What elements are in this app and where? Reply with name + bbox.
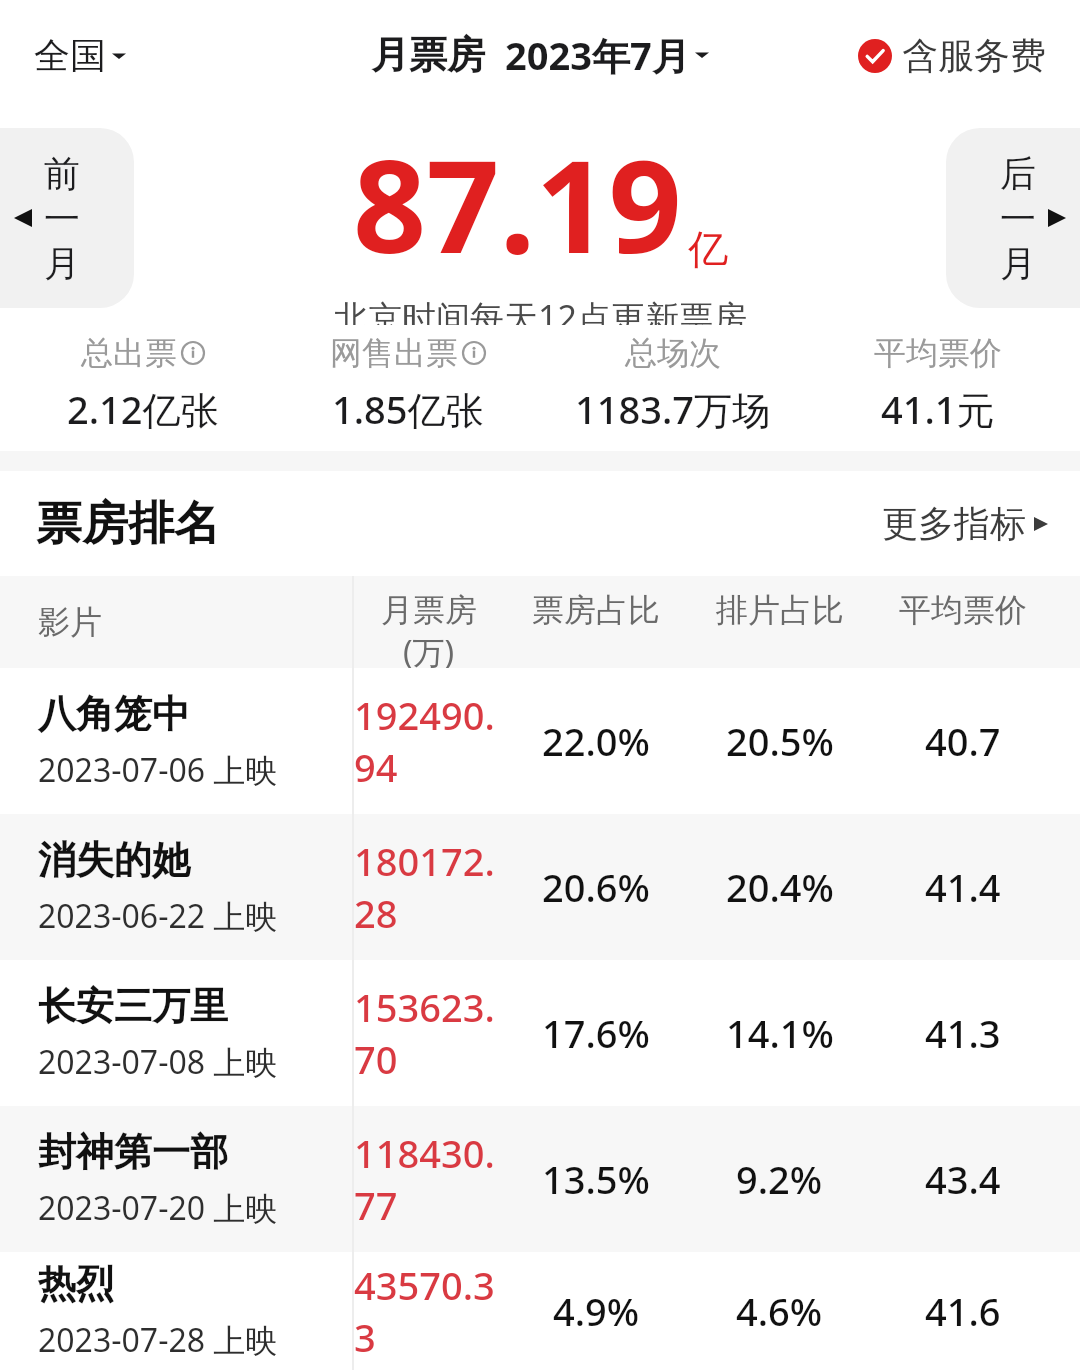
staticText: 一 <box>1000 196 1036 241</box>
button[interactable]: 更多指标 <box>878 497 1052 550</box>
staticText: 118430.77 <box>354 1127 504 1231</box>
staticText: 2023年7月 <box>505 29 690 81</box>
staticText: 票房占比 <box>532 590 660 630</box>
staticText: 4.6% <box>736 1285 823 1337</box>
staticText: 2023-07-06 上映 <box>38 748 278 792</box>
staticText: 9.2% <box>736 1153 823 1205</box>
staticText: 20.6% <box>542 861 650 913</box>
staticText: 票房排名 <box>36 495 220 553</box>
staticText: 影片 <box>38 602 102 642</box>
staticText: 4.9% <box>553 1285 640 1337</box>
staticText: 20.4% <box>726 861 834 913</box>
button[interactable]: 后 <box>946 128 1080 308</box>
staticText: 亿 <box>688 224 728 274</box>
staticText: 43570.33 <box>354 1259 504 1363</box>
staticText: 全国 <box>34 33 106 78</box>
staticText: 排片占比 <box>716 590 844 630</box>
staticText: 1183.7万场 <box>575 383 771 435</box>
button[interactable]: 前 <box>0 128 134 308</box>
staticText: (万) <box>403 630 455 668</box>
button[interactable]: 热烈 <box>0 1252 1080 1370</box>
staticText: 87.19 <box>353 116 682 290</box>
staticText: 180172.28 <box>354 835 504 939</box>
staticText: 41.3 <box>925 1007 1001 1059</box>
other: 后一月 <box>946 128 1080 308</box>
button[interactable]: 封神第一部 <box>0 1106 1080 1252</box>
staticText: 更多指标 <box>882 501 1026 546</box>
staticText: 17.6% <box>542 1007 650 1059</box>
staticText: 41.4 <box>925 861 1001 913</box>
staticText: 含服务费 <box>902 33 1046 78</box>
staticText: 一 <box>44 196 80 241</box>
staticText: 月票房 <box>371 31 485 79</box>
other: 含服务费 <box>858 39 892 73</box>
button[interactable]: 含服务费 <box>854 29 1050 82</box>
staticText: 43.4 <box>925 1153 1001 1205</box>
staticText: 总场次 <box>625 333 721 373</box>
staticText: 153623.70 <box>354 981 504 1085</box>
staticText: 2023-07-20 上映 <box>38 1186 278 1230</box>
staticText: 消失的她 <box>38 836 190 884</box>
staticText: 前 <box>44 151 80 196</box>
staticText: 月 <box>1000 241 1036 286</box>
other: 前一月 <box>0 128 134 308</box>
staticText: 2.12亿张 <box>67 383 219 435</box>
staticText: 2023-07-08 上映 <box>38 1040 278 1084</box>
staticText: 22.0% <box>542 715 650 767</box>
staticText: 192490.94 <box>354 689 504 793</box>
staticText: 封神第一部 <box>38 1128 228 1176</box>
staticText: 八角笼中 <box>38 690 190 738</box>
staticText: 长安三万里 <box>38 982 228 1030</box>
staticText: 41.1元 <box>881 383 995 435</box>
button[interactable]: 八角笼中 <box>0 668 1080 814</box>
staticText: 网售出票 <box>330 333 458 373</box>
staticText: 2023-07-28 上映 <box>38 1318 278 1362</box>
button[interactable]: 全国 <box>30 27 130 84</box>
staticText: 热烈 <box>38 1260 114 1308</box>
staticText: 北京时间每天12点更新票房 <box>334 294 747 325</box>
staticText: 总出票 <box>81 333 177 373</box>
staticText: 1.85亿张 <box>332 383 484 435</box>
staticText: 20.5% <box>726 715 834 767</box>
staticText: 平均票价 <box>899 590 1027 630</box>
staticText: 月 <box>44 241 80 286</box>
staticText: 14.1% <box>726 1007 834 1059</box>
staticText: 13.5% <box>542 1153 650 1205</box>
staticText: 月票房 <box>381 590 477 630</box>
staticText: 平均票价 <box>874 333 1002 373</box>
button[interactable]: 长安三万里 <box>0 960 1080 1106</box>
staticText: 2023-06-22 上映 <box>38 894 278 938</box>
button[interactable]: 月票房 <box>367 25 713 85</box>
staticText: 后 <box>1000 151 1036 196</box>
staticText: 40.7 <box>925 715 1001 767</box>
button[interactable]: 消失的她 <box>0 814 1080 960</box>
staticText: 41.6 <box>925 1285 1001 1337</box>
